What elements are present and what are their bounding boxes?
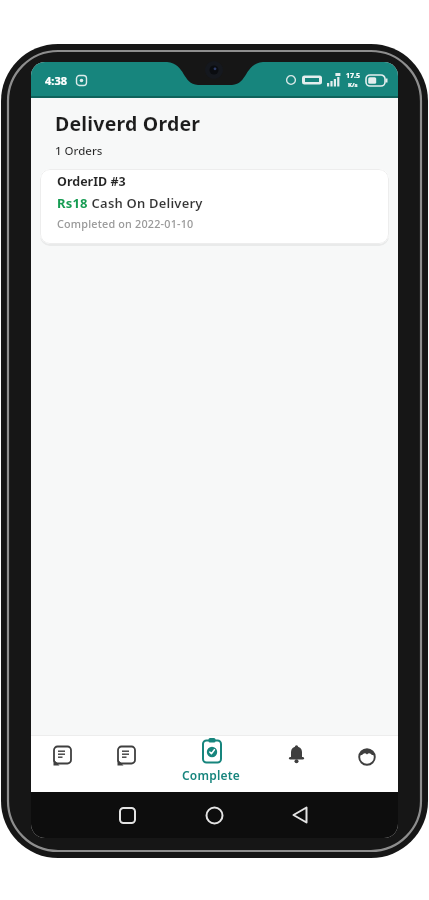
- staticText: 17.5: [346, 71, 360, 81]
- staticText: Deliverd Order: [55, 110, 201, 137]
- button[interactable]: [252, 735, 325, 792]
- staticText: 4:38: [45, 73, 67, 88]
- staticText: OrderID #3: [57, 173, 126, 190]
- staticText: 1 Orders: [55, 143, 103, 159]
- staticText: Cash On Delivery: [88, 194, 203, 212]
- button[interactable]: OrderID #3: [40, 169, 389, 244]
- staticText: Rs18: [57, 194, 88, 212]
- button[interactable]: [194, 795, 234, 835]
- staticText: Completed on 2022-01-10: [57, 216, 194, 231]
- button[interactable]: [281, 795, 321, 835]
- staticText: K/s: [348, 81, 358, 89]
- button[interactable]: [31, 735, 105, 792]
- button[interactable]: [107, 795, 147, 835]
- staticText: Complete: [182, 767, 241, 783]
- button[interactable]: [325, 735, 398, 792]
- button[interactable]: [105, 735, 179, 792]
- button[interactable]: Complete: [179, 735, 252, 792]
